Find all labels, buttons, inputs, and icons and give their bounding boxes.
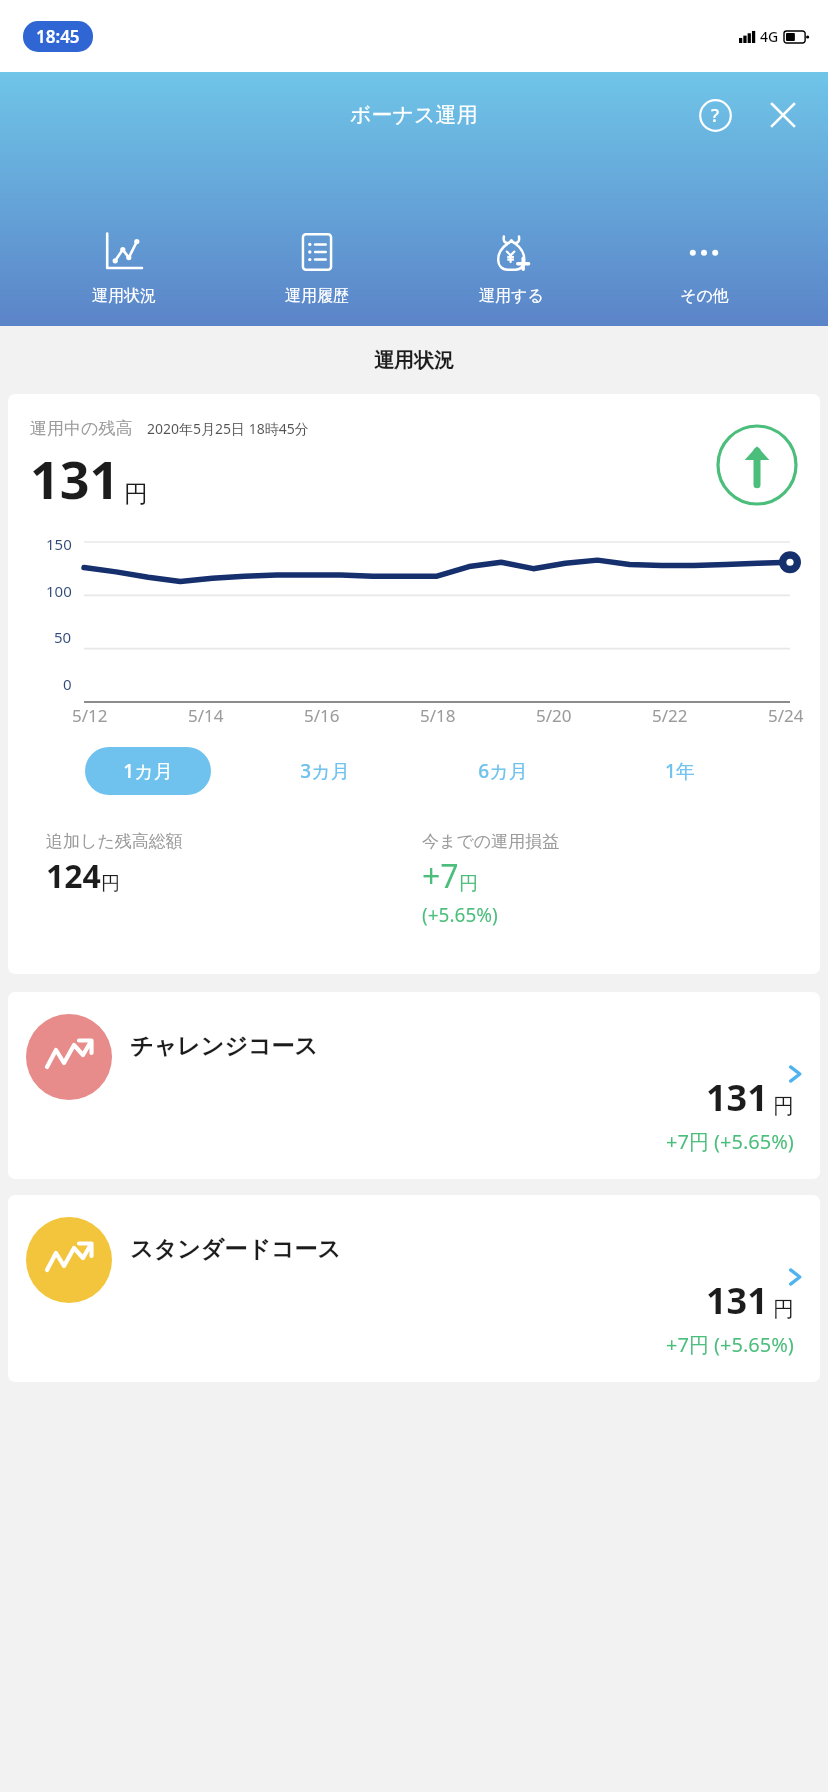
staticText: その他 <box>680 286 729 306</box>
staticText: 150 <box>46 534 72 554</box>
button[interactable]: 1年 <box>617 747 743 795</box>
staticText: 100 <box>46 581 72 601</box>
button[interactable]: 6カ月 <box>440 747 566 795</box>
staticText: 1カ月 <box>123 758 173 784</box>
staticText: 運用中の残高 <box>30 418 133 439</box>
staticText: 2020年5月25日 18時45分 <box>147 419 309 438</box>
staticText: 5/24 <box>768 704 804 727</box>
staticText: 5/14 <box>188 704 224 727</box>
button[interactable]: 運用履歴 <box>247 224 387 310</box>
staticText: 6カ月 <box>478 758 528 784</box>
staticText: 1年 <box>665 758 695 784</box>
staticText: 運用状況 <box>92 286 156 306</box>
staticText: 運用する <box>479 286 544 306</box>
staticText: 3カ月 <box>300 758 350 784</box>
staticText: 0 <box>63 674 72 694</box>
staticText: 50 <box>54 627 72 647</box>
staticText: 円 <box>459 872 478 896</box>
staticText: 運用状況 <box>374 348 454 373</box>
staticText: 5/12 <box>72 704 108 727</box>
staticText: 運用履歴 <box>285 286 349 306</box>
staticText: 5/20 <box>536 704 572 727</box>
staticText: 131 <box>30 443 120 514</box>
staticText: ボーナス運用 <box>350 102 478 128</box>
button[interactable]: 運用状況 <box>54 224 194 310</box>
button[interactable]: その他 <box>634 224 774 310</box>
button[interactable]: スタンダードコース <box>8 1195 820 1382</box>
staticText: 追加した残高総額 <box>46 831 183 852</box>
other: 上昇 <box>716 424 798 506</box>
staticText: 円 <box>773 1093 794 1119</box>
button[interactable]: チャレンジコース <box>8 992 820 1179</box>
staticText: 4G <box>760 27 779 46</box>
staticText: +7円 (+5.65%) <box>666 1128 794 1155</box>
staticText: 5/16 <box>304 704 340 727</box>
button[interactable]: ヘルプ <box>694 94 736 136</box>
staticText: +7 <box>422 854 459 898</box>
button[interactable]: 3カ月 <box>262 747 388 795</box>
staticText: ? <box>711 103 720 128</box>
staticText: 131 <box>706 1276 768 1325</box>
staticText: 5/22 <box>652 704 688 727</box>
button[interactable]: 1カ月 <box>85 747 211 795</box>
staticText: (+5.65%) <box>422 902 498 928</box>
staticText: +7円 (+5.65%) <box>666 1331 794 1358</box>
staticText: 131 <box>706 1073 768 1122</box>
staticText: 124 <box>46 854 101 898</box>
staticText: 円 <box>773 1296 794 1322</box>
staticText: 円 <box>124 479 148 509</box>
staticText: 今までの運用損益 <box>422 831 560 852</box>
staticText: チャレンジコース <box>130 1032 318 1061</box>
button[interactable]: 閉じる <box>762 94 804 136</box>
button[interactable]: 運用する <box>441 224 581 310</box>
staticText: 円 <box>101 872 120 896</box>
staticText: 5/18 <box>420 704 456 727</box>
staticText: 18:45 <box>36 25 80 48</box>
staticText: スタンダードコース <box>130 1235 341 1264</box>
